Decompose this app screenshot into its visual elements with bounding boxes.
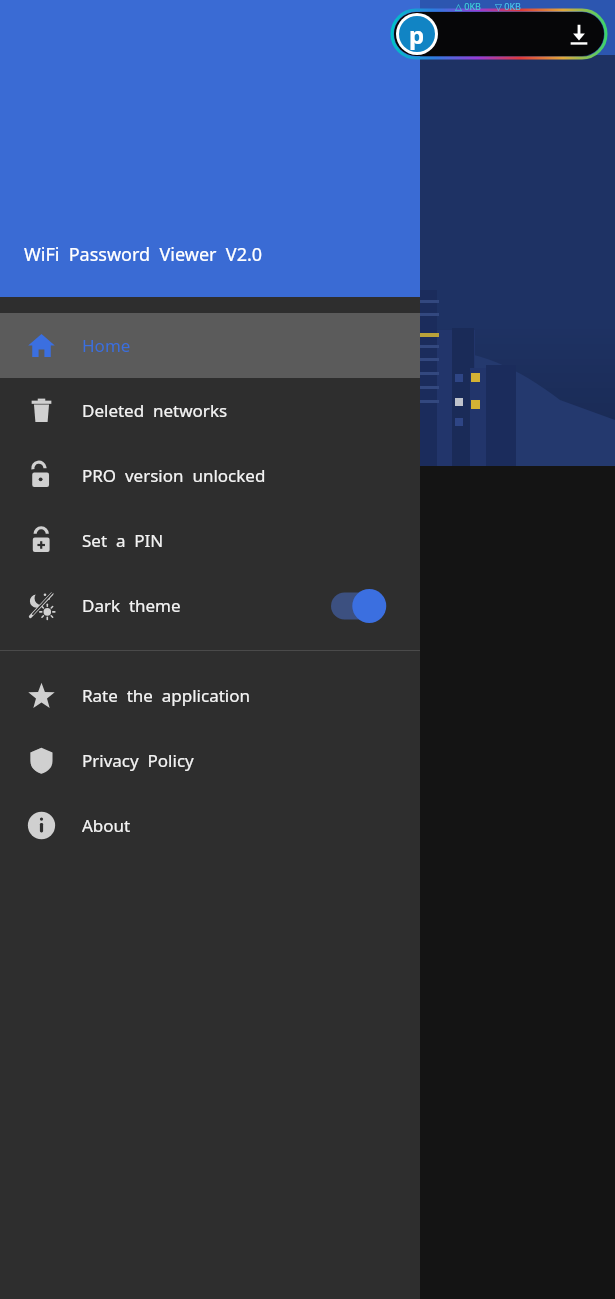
- button[interactable]: Dark theme: [0, 573, 420, 638]
- button[interactable]: Home: [0, 313, 420, 378]
- button[interactable]: Privacy Policy: [0, 728, 420, 793]
- staticText: WiFi Password Viewer V2.0: [24, 242, 263, 267]
- staticText: Home: [82, 334, 131, 357]
- button[interactable]: Set a PIN: [0, 508, 420, 573]
- button[interactable]: [331, 589, 389, 623]
- button[interactable]: About: [0, 793, 420, 858]
- staticText: Deleted networks: [82, 399, 228, 422]
- button[interactable]: Rate the application: [0, 663, 420, 728]
- staticText: Privacy Policy: [82, 749, 194, 772]
- staticText: △ 0KB: [455, 0, 481, 12]
- staticText: About: [82, 814, 131, 837]
- staticText: 90: [396, 17, 415, 39]
- staticText: Rate the application: [82, 684, 250, 707]
- staticText: Dark theme: [82, 594, 181, 617]
- staticText: ▽ 0KB: [495, 0, 521, 12]
- button[interactable]: Deleted networks: [0, 378, 420, 443]
- other: Download: [568, 23, 590, 45]
- button[interactable]: PRO version unlocked: [0, 443, 420, 508]
- staticText: p: [409, 18, 425, 51]
- staticText: Set a PIN: [82, 529, 164, 552]
- staticText: PRO version unlocked: [82, 464, 266, 487]
